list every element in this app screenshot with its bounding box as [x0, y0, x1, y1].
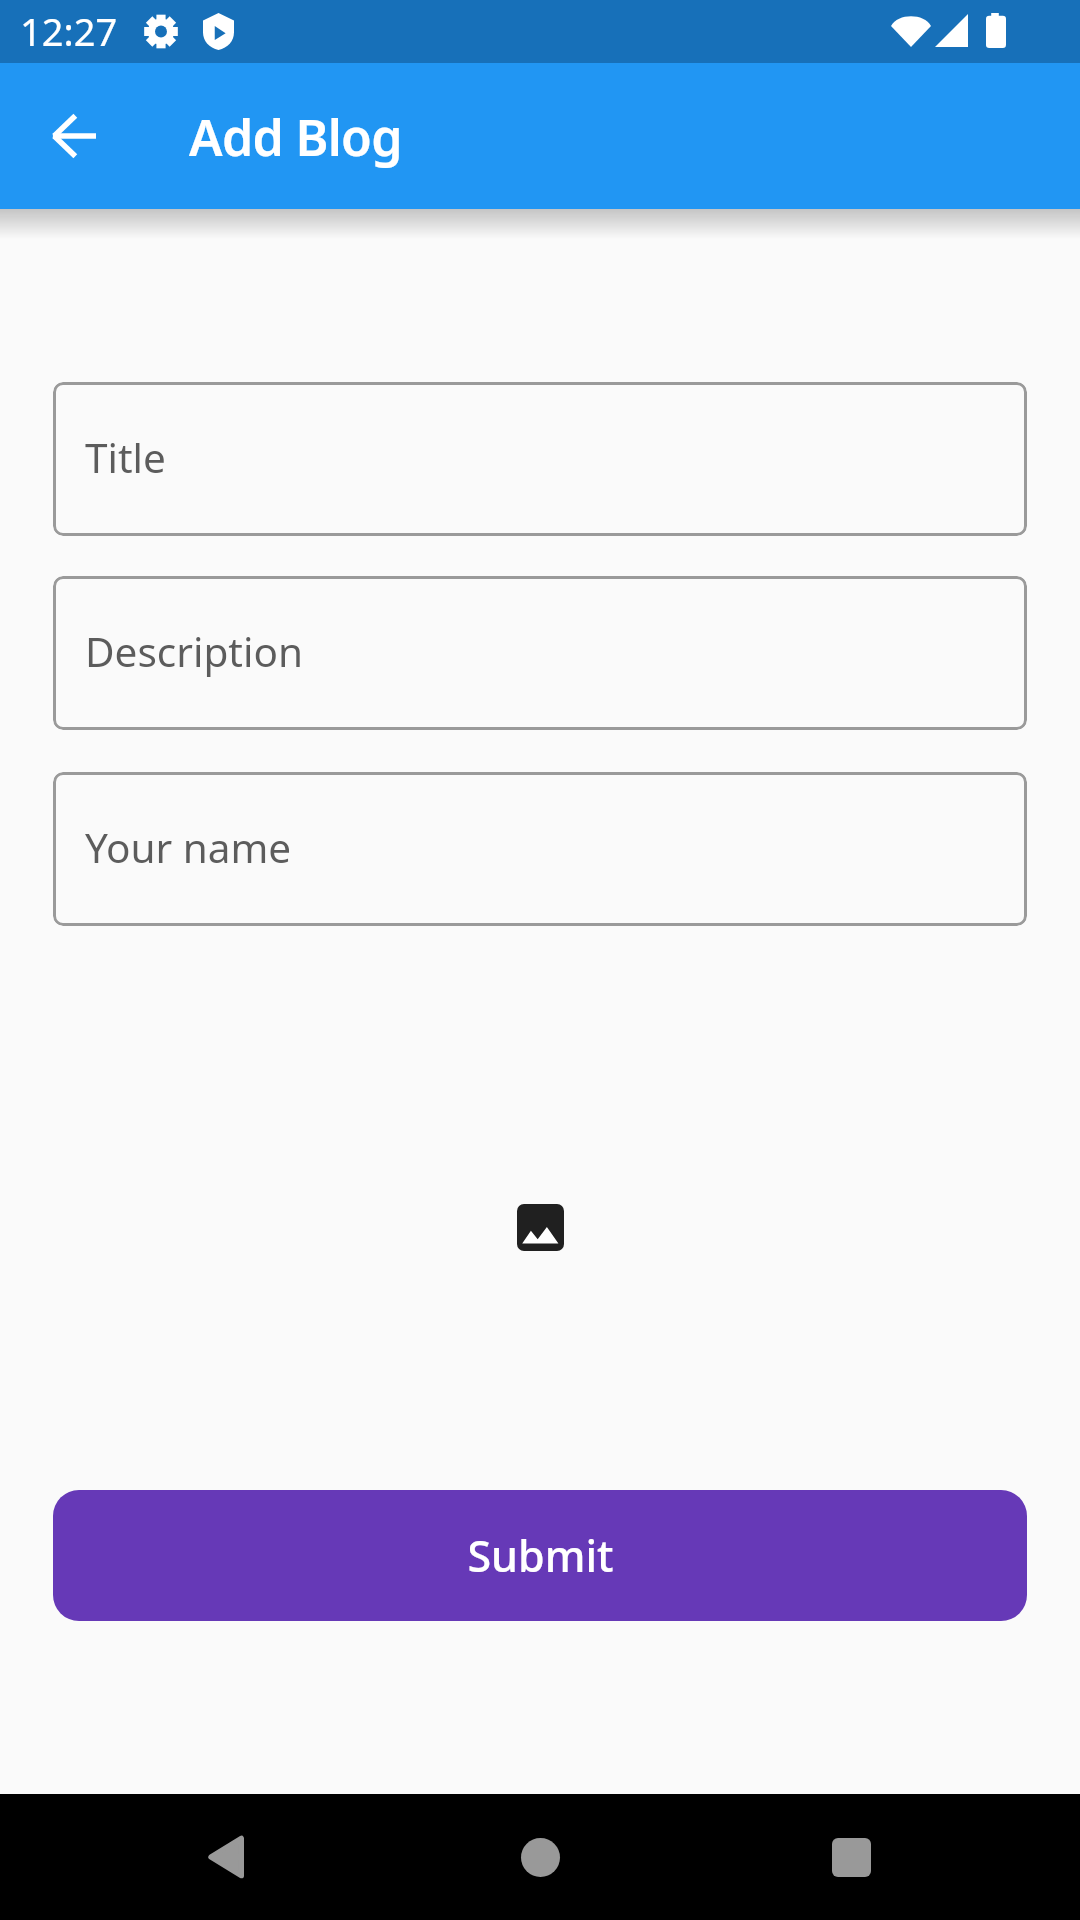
button[interactable]: Pick image	[517, 1204, 564, 1251]
button[interactable]: Home	[477, 1794, 603, 1920]
staticText: Description	[85, 624, 303, 679]
button[interactable]: Recents	[788, 1794, 914, 1920]
staticText: Title	[85, 430, 166, 485]
staticText: 12:27	[20, 5, 118, 57]
staticText: Submit	[467, 1526, 614, 1585]
button[interactable]: Submit	[53, 1490, 1027, 1621]
button[interactable]: Your name	[53, 772, 1027, 926]
button[interactable]: Title	[53, 382, 1027, 536]
staticText: Your name	[85, 820, 292, 875]
staticText: Add Blog	[189, 103, 402, 171]
button[interactable]: Description	[53, 576, 1027, 730]
button[interactable]: Back	[30, 92, 118, 180]
button[interactable]: Back	[162, 1794, 288, 1920]
